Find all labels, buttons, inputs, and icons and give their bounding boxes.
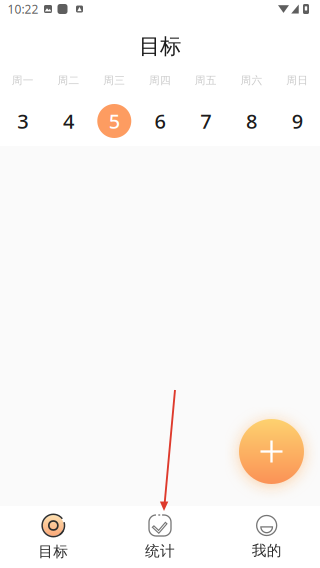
staticText: 我的 — [252, 541, 282, 559]
button[interactable]: 8 — [229, 101, 274, 141]
staticText: 6 — [154, 108, 165, 134]
button[interactable]: 7 — [183, 101, 229, 141]
staticText: 周日 — [286, 74, 308, 87]
staticText: 周二 — [58, 74, 80, 87]
staticText: 目标 — [139, 33, 181, 60]
button[interactable]: 6 — [137, 101, 183, 141]
staticText: 周四 — [149, 74, 171, 87]
staticText: 7 — [200, 108, 211, 134]
staticText: 10:22 — [7, 1, 38, 17]
staticText: 3 — [17, 108, 28, 134]
staticText: 周六 — [240, 74, 262, 87]
button[interactable]: 5 — [91, 101, 137, 141]
staticText: 目标 — [38, 542, 68, 560]
button[interactable]: 我的 — [213, 506, 320, 568]
staticText: 统计 — [145, 542, 175, 560]
button[interactable]: 目标 — [0, 506, 107, 568]
staticText: 周一 — [12, 74, 34, 87]
button[interactable]: 统计 — [107, 506, 213, 568]
button[interactable]: 9 — [274, 101, 320, 141]
staticText: 4 — [63, 108, 74, 134]
staticText: 9 — [292, 108, 303, 134]
button[interactable]: Add — [239, 419, 304, 484]
staticText: 周三 — [103, 74, 125, 87]
button[interactable]: 3 — [0, 101, 46, 141]
staticText: 8 — [246, 108, 257, 134]
staticText: 5 — [109, 108, 120, 134]
button[interactable]: 4 — [46, 101, 91, 141]
staticText: 周五 — [195, 74, 217, 87]
